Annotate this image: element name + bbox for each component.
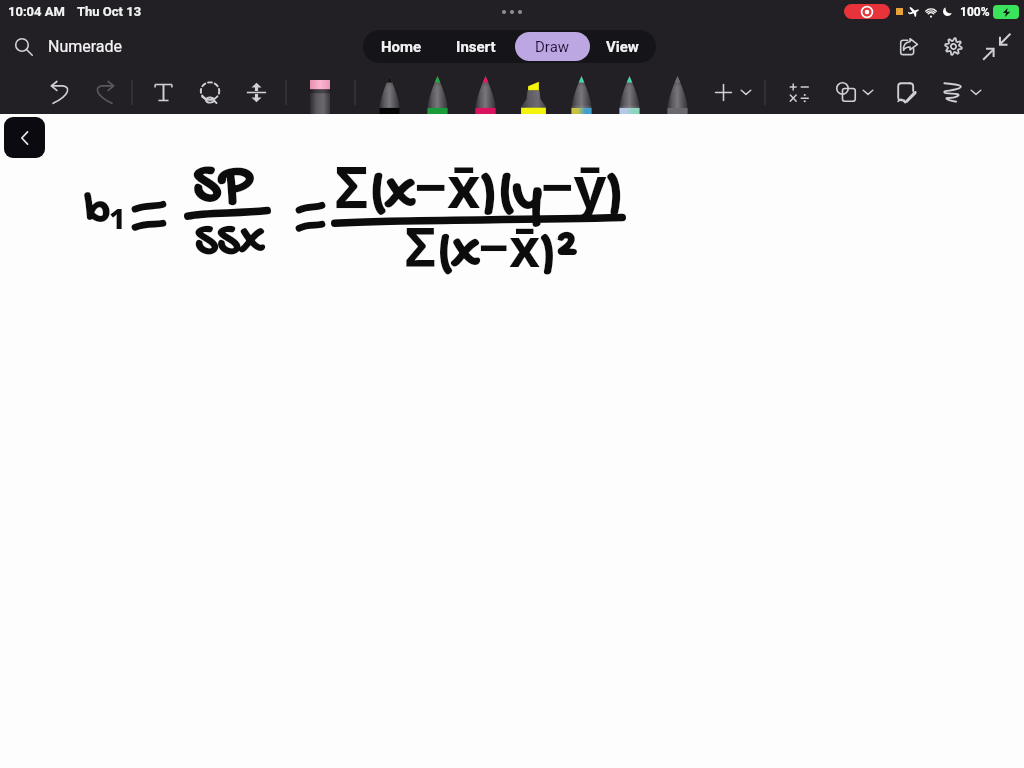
staticText: Σ(x−x̄)² — [405, 210, 576, 288]
button[interactable]: More options — [735, 81, 757, 103]
button[interactable]: Text — [147, 76, 179, 108]
button[interactable]: Redo — [88, 76, 120, 108]
button[interactable]: Add — [707, 76, 739, 108]
button[interactable]: Pen — [0, 70, 997, 114]
button[interactable]: Lasso — [194, 76, 226, 108]
button[interactable]: Settings — [936, 29, 970, 63]
staticText: b₁ — [84, 173, 127, 242]
button[interactable]: Highlighter — [21, 70, 1024, 114]
button[interactable]: Share — [891, 29, 925, 63]
button[interactable]: Pen — [0, 70, 949, 114]
staticText: 100% — [960, 5, 990, 19]
button[interactable]: More options — [965, 81, 987, 103]
staticText: Insert — [456, 38, 496, 56]
staticText: 10:04 AM — [8, 4, 65, 19]
button[interactable]: Math — [783, 76, 815, 108]
button[interactable]: Sticky note — [891, 76, 923, 108]
staticText: Thu Oct 13 — [77, 4, 142, 19]
button[interactable]: Shapes — [830, 76, 862, 108]
button[interactable]: Pen — [0, 70, 901, 114]
button[interactable]: Eraser — [0, 70, 832, 114]
staticText: Draw — [535, 38, 570, 56]
button[interactable]: Collapse — [979, 29, 1013, 63]
staticText: Home — [381, 38, 422, 56]
button[interactable]: Numerade — [14, 37, 123, 56]
button[interactable]: View — [590, 32, 654, 61]
button[interactable]: Pen — [117, 70, 1024, 114]
staticText: Σ(x−x̄)(y−ȳ) — [335, 147, 623, 231]
button[interactable]: Insert — [437, 32, 515, 61]
button[interactable]: Pen — [165, 70, 1024, 114]
staticText: SSx — [194, 216, 264, 273]
button[interactable]: Home — [365, 32, 437, 61]
staticText: Numerade — [48, 37, 123, 56]
button[interactable]: Ink style — [938, 76, 970, 108]
button[interactable]: Screen recording — [844, 4, 890, 19]
staticText: SP — [192, 155, 251, 223]
button[interactable]: Insert space — [240, 76, 272, 108]
button[interactable]: Undo — [44, 76, 76, 108]
button[interactable]: Draw — [515, 32, 590, 61]
staticText: View — [606, 38, 639, 56]
button[interactable]: Back — [4, 117, 45, 158]
button[interactable]: More options — [857, 81, 879, 103]
button[interactable]: Pen — [69, 70, 1024, 114]
